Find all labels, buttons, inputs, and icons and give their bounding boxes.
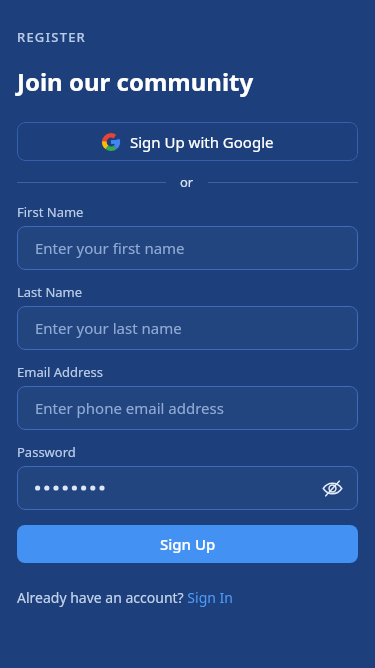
staticText: Enter your last name <box>35 318 182 338</box>
button[interactable]: Show password <box>17 466 358 510</box>
staticText: First Name <box>17 203 84 221</box>
button[interactable]: Show password <box>320 476 344 500</box>
button[interactable]: Sign Up with Google <box>17 122 358 161</box>
button[interactable]: Enter phone email address <box>17 386 358 430</box>
button[interactable]: Sign Up <box>17 525 358 563</box>
staticText: or <box>180 173 194 191</box>
staticText: REGISTER <box>17 28 87 46</box>
staticText: Email Address <box>17 363 103 381</box>
staticText: Last Name <box>17 283 83 301</box>
staticText: Sign Up with Google <box>130 132 274 152</box>
staticText: Join our community <box>17 65 254 98</box>
staticText: Sign Up <box>160 534 216 554</box>
staticText: Already have an account? Sign In <box>17 588 233 607</box>
staticText: Enter your first name <box>35 238 185 258</box>
staticText: Password <box>17 443 76 461</box>
staticText: Enter phone email address <box>35 398 224 418</box>
button[interactable]: Enter your first name <box>17 226 358 270</box>
button[interactable]: Enter your last name <box>17 306 358 350</box>
button[interactable]: Already have an account? Sign In <box>17 588 233 607</box>
